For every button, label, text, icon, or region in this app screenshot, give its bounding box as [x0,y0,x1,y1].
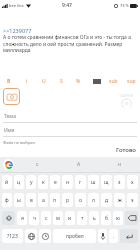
button[interactable]: sub [107,75,120,88]
staticText: м [56,215,60,222]
staticText: в [30,197,33,204]
button[interactable]: я [17,211,27,225]
staticText: . [113,233,115,240]
staticText: ?123 [7,233,18,240]
staticText: п [53,197,57,204]
button[interactable]: ы [14,193,24,207]
button[interactable]: б [101,211,111,225]
staticText: Тема [4,113,16,120]
staticText: % [76,78,81,85]
staticText: >>1239077 [3,27,32,34]
button[interactable]: к [38,175,48,189]
button[interactable]: р [62,193,73,207]
button[interactable]: ч [29,211,39,225]
button[interactable]: а [38,193,48,207]
staticText: ц [17,179,21,186]
button[interactable]: Имя [3,124,137,137]
button[interactable]: ш [88,175,99,189]
staticText: U [42,78,46,85]
staticText: с [45,215,48,222]
button[interactable]: в [26,193,36,207]
button[interactable]: ?123 [2,229,23,243]
button[interactable]: г [75,175,86,189]
staticText: и [68,215,72,222]
staticText: sup [127,78,136,85]
staticText: bee line [9,3,24,8]
staticText: з [118,179,121,186]
button[interactable]: у [26,175,36,189]
button[interactable]: B [2,75,15,88]
staticText: р [66,197,70,204]
staticText: д [105,197,109,204]
button[interactable]: н [99,157,140,172]
button[interactable]: S [55,75,68,88]
staticText: 9:47 [62,2,72,9]
staticText: Имя [4,127,15,134]
button[interactable]: х [127,175,138,189]
button[interactable]: з [114,175,125,189]
button[interactable]: Voice input [98,229,107,243]
button[interactable]: и [65,211,75,225]
staticText: А [77,161,81,168]
button[interactable]: н [62,175,73,189]
staticText: я [21,215,24,222]
staticText: й [5,179,9,186]
staticText: ф [5,197,9,204]
button[interactable]: л [88,193,99,207]
button[interactable]: е [50,175,60,189]
staticText: л [92,197,95,204]
staticText: т [81,215,84,222]
button[interactable]: Enter [120,229,138,243]
staticText: а [42,197,45,204]
button[interactable]: i [20,75,33,88]
button[interactable]: п [50,193,60,207]
staticText: б [105,215,108,222]
button[interactable]: ц [14,175,24,189]
staticText: х [131,179,134,186]
staticText: ш [91,179,96,186]
staticText: к [42,179,45,186]
button[interactable]: ф [2,193,12,207]
button[interactable]: э [127,193,138,207]
staticText: 73 % [120,3,129,8]
button[interactable]: ю [113,211,123,225]
staticText: э [131,197,134,204]
staticText: ж [118,197,122,204]
button[interactable]: U [37,75,50,88]
button[interactable]: й [2,175,12,189]
button[interactable]: Backspace [125,211,138,225]
button[interactable]: д [101,193,112,207]
button[interactable]: Shift [2,211,15,225]
button[interactable]: Spoiler [90,75,103,88]
staticText: ы [17,197,21,204]
staticText: ю [116,215,120,222]
button[interactable]: Attach image [3,88,20,105]
staticText: о [79,197,82,204]
staticText: н [66,179,70,186]
button[interactable]: с [17,157,58,172]
staticText: reCAPTCHA [119,94,133,98]
button[interactable]: с [41,211,51,225]
staticText: i [26,78,28,85]
button[interactable]: Google search [3,159,14,170]
button[interactable]: sup [125,75,138,88]
button[interactable]: % [72,75,85,88]
staticText: пробел [66,233,84,240]
button[interactable]: о [75,193,86,207]
staticText: ь [93,215,96,222]
button[interactable]: Emoji [39,229,51,243]
staticText: г [79,179,82,186]
button[interactable]: Тема [3,110,137,123]
button[interactable]: А [58,157,99,172]
button[interactable]: м [53,211,63,225]
button[interactable]: т [77,211,87,225]
button[interactable]: Готово [116,146,136,154]
staticText: А о тотем сравнении финансов ОГа и это -… [3,34,137,54]
button[interactable]: ь [89,211,99,225]
button[interactable]: щ [101,175,112,189]
button[interactable]: ж [114,193,125,207]
staticText: ч [33,215,36,222]
button[interactable]: пробел [53,229,96,243]
button[interactable]: Change keyboard language [25,229,37,243]
button[interactable]: . [109,229,118,243]
